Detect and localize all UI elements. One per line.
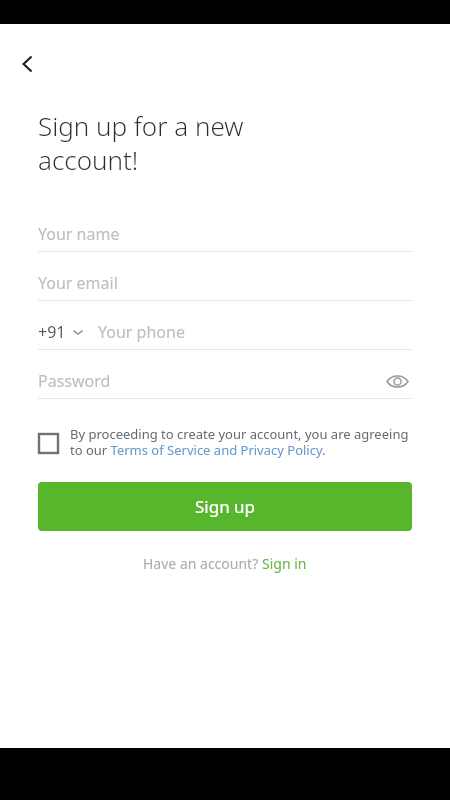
button[interactable]: Show password bbox=[382, 366, 412, 396]
staticText: Your phone bbox=[98, 321, 185, 343]
staticText: Password bbox=[38, 370, 111, 392]
button[interactable]: Have an account? bbox=[143, 554, 307, 573]
button[interactable]: Your phone bbox=[98, 321, 412, 343]
button[interactable]: Sign up bbox=[38, 482, 412, 531]
button[interactable]: Accept terms checkbox bbox=[38, 425, 416, 458]
staticText: Sign up bbox=[195, 495, 256, 518]
staticText: Your email bbox=[38, 272, 118, 294]
staticText: Your name bbox=[38, 223, 120, 245]
staticText: Sign in bbox=[262, 554, 307, 573]
other: Accept terms checkbox bbox=[38, 433, 59, 454]
staticText: Have an account? bbox=[143, 554, 262, 573]
button[interactable]: Your name bbox=[38, 217, 412, 266]
staticText: By proceeding to create your account, yo… bbox=[70, 425, 416, 458]
staticText: Sign up for a new account! bbox=[38, 108, 244, 177]
button[interactable]: Back bbox=[6, 42, 50, 86]
button[interactable]: Password bbox=[38, 370, 382, 392]
staticText: +91 bbox=[38, 321, 66, 343]
button[interactable]: +91 bbox=[38, 321, 84, 343]
button[interactable]: Your email bbox=[38, 266, 412, 315]
